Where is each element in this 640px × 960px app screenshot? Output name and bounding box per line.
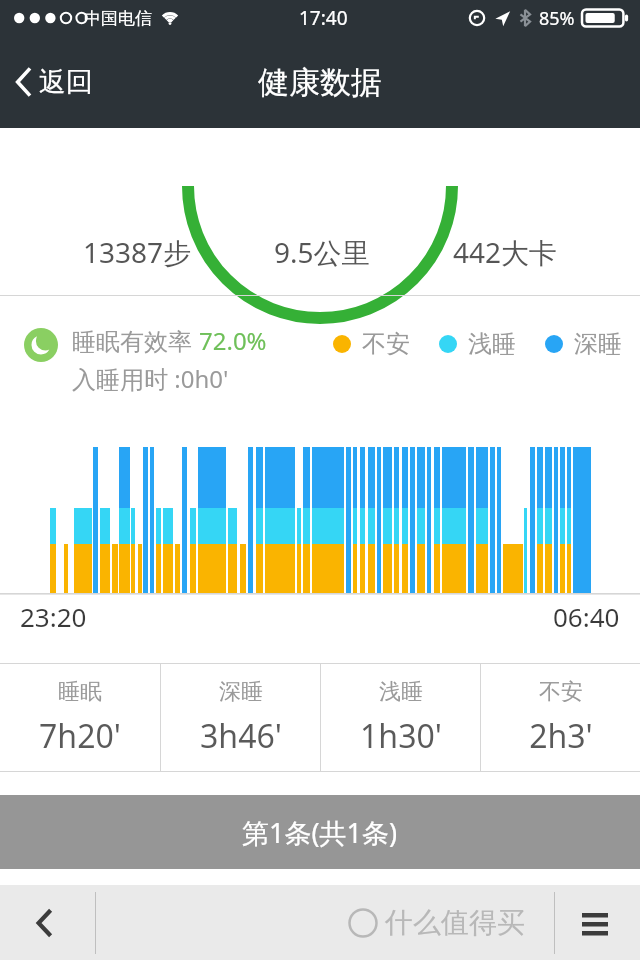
staticText: 睡眠 [58, 678, 102, 706]
button[interactable]: 不安 [481, 664, 640, 771]
staticText: 17:40 [299, 5, 348, 31]
staticText: 442大卡 [453, 233, 558, 271]
staticText: 浅睡 [468, 329, 516, 359]
staticText: 深睡 [219, 678, 263, 706]
staticText: 23:20 [20, 599, 87, 634]
button[interactable]: Menu [572, 900, 618, 946]
button[interactable]: 浅睡 [321, 664, 480, 771]
staticText: 85% [539, 6, 575, 31]
staticText: 3h46' [200, 714, 282, 758]
staticText: 不安 [362, 329, 410, 359]
staticText: 13387步 [83, 233, 192, 271]
button[interactable]: 深睡 [161, 664, 320, 771]
staticText: 返回 [39, 65, 93, 99]
staticText: 第1条(共1条) [242, 814, 398, 851]
staticText: 中国电信 [84, 8, 152, 29]
staticText: 06:40 [553, 599, 620, 634]
staticText: 深睡 [574, 329, 622, 359]
button[interactable]: 睡眠 [0, 664, 160, 771]
button[interactable]: 第1条(共1条) [0, 795, 640, 869]
staticText: 什么值得买 [385, 905, 525, 940]
staticText: 7h20' [39, 714, 121, 758]
staticText: 浅睡 [379, 678, 423, 706]
staticText: 9.5公里 [274, 233, 370, 271]
staticText: 不安 [539, 678, 583, 706]
button[interactable]: 返回 [0, 57, 109, 107]
staticText: 72.0% [199, 324, 267, 357]
staticText: 2h3' [529, 714, 593, 758]
staticText: 1h30' [360, 714, 442, 758]
staticText: 健康数据 [258, 63, 382, 102]
staticText: 入睡用时 :0h0' [72, 362, 229, 395]
staticText: 睡眠有效率 [72, 324, 199, 357]
button[interactable]: Back [22, 900, 68, 946]
